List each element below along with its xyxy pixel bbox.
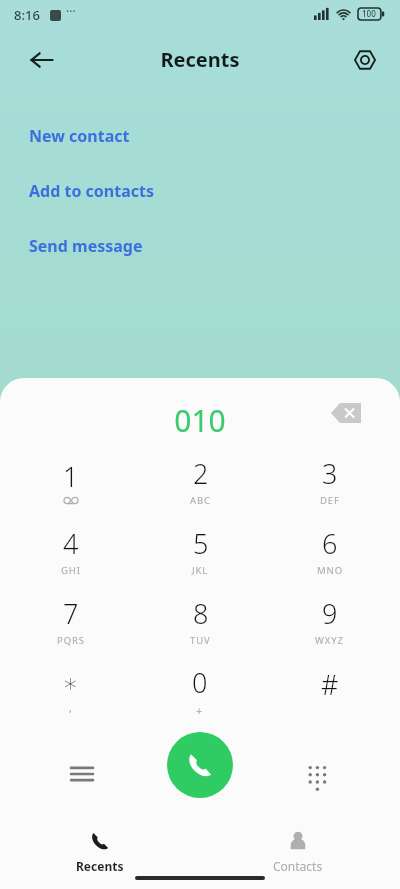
button[interactable]: 3 [259, 446, 400, 516]
button[interactable]: 9 [259, 586, 400, 656]
staticText: PQRS [57, 634, 85, 647]
staticText: 5 [193, 525, 209, 562]
staticText: 4 [63, 525, 79, 562]
button[interactable]: New contact [0, 108, 400, 163]
button[interactable]: 2 [141, 446, 259, 516]
staticText: Add to contacts [29, 180, 154, 202]
staticText: 2 [193, 455, 209, 492]
staticText: Recents [0, 46, 400, 73]
button[interactable]: Add to contacts [0, 163, 400, 218]
button[interactable]: Recents [55, 830, 145, 874]
staticText: 100 [362, 8, 376, 19]
staticText: 1 [63, 458, 79, 495]
button[interactable]: 6 [259, 516, 400, 586]
staticText: Contacts [273, 858, 323, 874]
button[interactable]: 7 [0, 586, 141, 656]
staticText: JKL [192, 564, 209, 577]
button[interactable]: 0 [141, 656, 259, 726]
button[interactable]: Keypad [293, 750, 341, 798]
button[interactable]: Send message [0, 218, 400, 273]
button[interactable]: 5 [141, 516, 259, 586]
staticText: 7 [63, 595, 79, 632]
button[interactable]: ∗ [0, 656, 141, 726]
staticText: 9 [322, 595, 338, 632]
button[interactable]: Call [167, 732, 233, 798]
button[interactable]: Backspace [322, 396, 370, 430]
staticText: DEF [320, 494, 340, 507]
button[interactable]: 8 [141, 586, 259, 656]
button[interactable]: Menu [58, 750, 106, 798]
staticText: 0 [192, 664, 208, 701]
button[interactable]: 1 [0, 446, 141, 516]
staticText: + [196, 703, 204, 718]
staticText: ··· [66, 3, 76, 19]
staticText: Send message [29, 235, 143, 257]
staticText: MNO [317, 564, 343, 577]
staticText: , [69, 700, 73, 715]
staticText: # [321, 666, 339, 703]
staticText: GHI [61, 564, 81, 577]
staticText: TUV [190, 634, 211, 647]
staticText: New contact [29, 125, 130, 147]
button[interactable]: # [259, 656, 400, 726]
staticText: 010 [0, 400, 400, 441]
staticText: 8:16 [14, 6, 40, 24]
staticText: 8 [193, 595, 209, 632]
staticText: Recents [76, 858, 124, 874]
button[interactable]: Settings [343, 38, 387, 82]
staticText: ABC [190, 494, 211, 507]
staticText: ∗ [62, 668, 79, 698]
button[interactable]: Contacts [253, 830, 343, 874]
staticText: WXYZ [315, 634, 344, 647]
button[interactable]: Back [20, 38, 64, 82]
staticText: 6 [322, 525, 338, 562]
staticText: 3 [322, 455, 338, 492]
button[interactable]: 4 [0, 516, 141, 586]
